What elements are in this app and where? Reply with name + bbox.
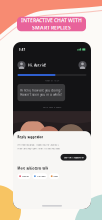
button[interactable]: Food — [49, 173, 59, 179]
staticText: Felix sent a photo — [43, 106, 61, 109]
staticText: Hi, Astrid! — [28, 62, 46, 67]
staticText: More subjects to talk — [17, 167, 48, 170]
staticText: Movies — [22, 175, 29, 178]
button[interactable]: Copy this suggestion — [60, 154, 86, 161]
staticText: Today at 10:24 — [45, 79, 59, 82]
staticText: Copy this suggestion — [63, 156, 83, 159]
staticText: 9:41 — [18, 47, 25, 52]
button[interactable]: Movies — [17, 173, 30, 179]
staticText: Reply suggestion — [17, 135, 43, 139]
staticText: Hi Felix, how are you doing? — [20, 89, 61, 92]
staticText: INTERACTIVE CHAT WITH — [21, 17, 82, 24]
staticText: I'm feeling great, thank you for asking … — [17, 143, 59, 146]
button[interactable]: Holidays — [32, 173, 47, 179]
staticText: How are you? Can't wait to see you soon. — [17, 147, 60, 150]
staticText: Food — [53, 175, 57, 178]
staticText: Haven't seen you in a while! — [20, 93, 62, 96]
staticText: SMART REPLIES — [32, 24, 71, 31]
staticText: Holidays — [37, 175, 46, 178]
